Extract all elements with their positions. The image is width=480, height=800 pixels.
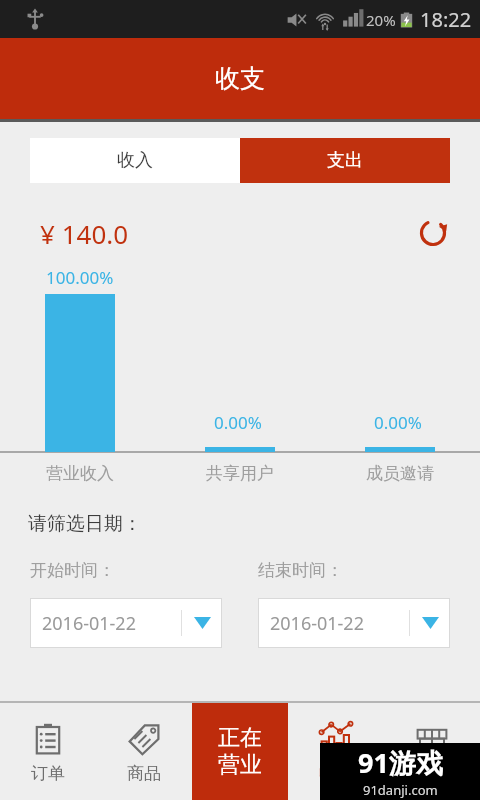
staticText: 营业收入	[46, 463, 114, 484]
staticText: 2016-01-22	[270, 611, 409, 636]
staticText: ¥ 140.0	[40, 216, 129, 251]
button[interactable]: 支出	[240, 138, 450, 183]
staticText: 收支	[215, 63, 265, 94]
staticText: 91danji.com	[363, 781, 438, 799]
button[interactable]: 正在 营业	[192, 703, 288, 800]
staticText: 20%	[366, 10, 396, 30]
staticText: 开始时间：	[30, 560, 115, 581]
staticText: 支出	[327, 149, 363, 172]
button[interactable]: 订单	[0, 703, 96, 800]
staticText: 0.00%	[374, 411, 422, 434]
staticText: 订单	[31, 763, 65, 784]
button[interactable]: 刷新	[412, 212, 454, 254]
staticText: 0.00%	[214, 411, 262, 434]
button[interactable]: 收支	[288, 703, 384, 800]
staticText: 收入	[117, 149, 153, 172]
staticText: 正在 营业	[218, 724, 262, 779]
staticText: 商品	[127, 763, 161, 784]
button[interactable]: 收入	[30, 138, 240, 183]
staticText: 成员邀请	[366, 463, 434, 484]
staticText: 2016-01-22	[42, 611, 181, 636]
staticText: 18:22	[420, 6, 472, 33]
staticText: 请筛选日期：	[28, 512, 142, 536]
staticText: 共享用户	[206, 463, 274, 484]
button[interactable]: 商品	[96, 703, 192, 800]
button[interactable]: 2016-01-22	[258, 598, 450, 648]
staticText: 91游戏	[358, 744, 443, 781]
staticText: 100.00%	[46, 266, 114, 289]
staticText: 收支	[319, 763, 353, 784]
staticText: 结束时间：	[258, 560, 343, 581]
button[interactable]: 店铺	[384, 703, 480, 800]
button[interactable]: 2016-01-22	[30, 598, 222, 648]
